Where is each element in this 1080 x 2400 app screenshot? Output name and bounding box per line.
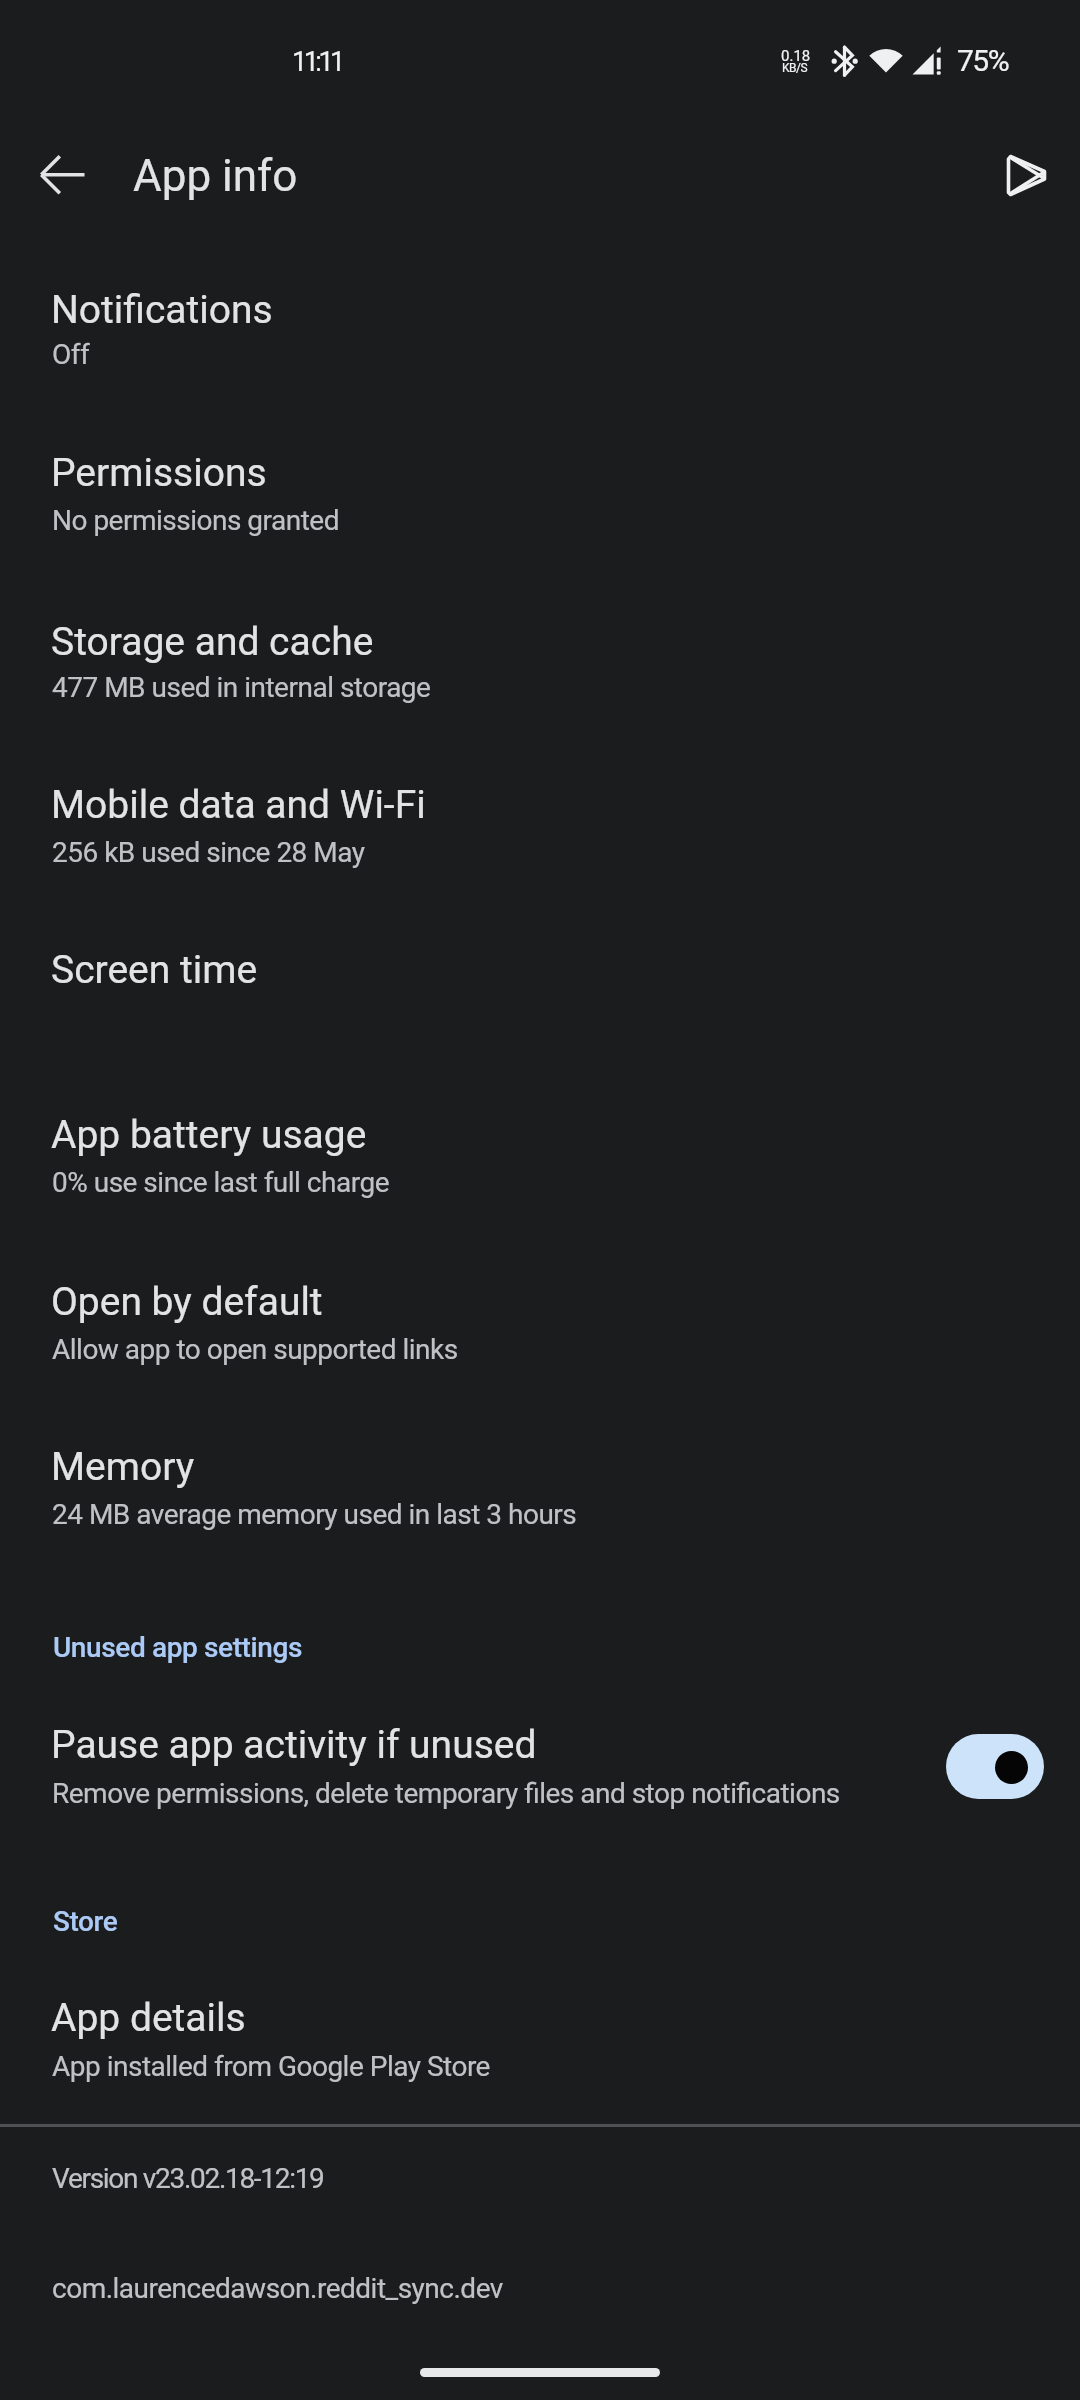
staticText: Memory xyxy=(51,1444,195,1490)
staticText: 24 MB average memory used in last 3 hour… xyxy=(52,1498,577,1531)
button[interactable] xyxy=(0,597,1080,737)
button[interactable] xyxy=(0,760,1080,900)
staticText: App info xyxy=(133,150,298,202)
staticText: 256 kB used since 28 May xyxy=(52,836,365,869)
button[interactable] xyxy=(946,1734,1044,1799)
staticText: Mobile data and Wi-Fi xyxy=(51,782,426,828)
staticText: 477 MB used in internal storage xyxy=(52,671,431,704)
button[interactable] xyxy=(0,428,1080,568)
staticText: Open by default xyxy=(51,1279,323,1325)
staticText: Notifications xyxy=(51,287,273,333)
staticText: Version v23.02.18-12:19 xyxy=(52,2162,324,2195)
staticText: Permissions xyxy=(51,450,267,496)
staticText: Unused app settings xyxy=(53,1631,302,1664)
staticText: App battery usage xyxy=(51,1112,367,1158)
staticText: Storage and cache xyxy=(51,619,374,665)
staticText: No permissions granted xyxy=(52,504,340,537)
staticText: Remove permissions, delete temporary fil… xyxy=(52,1777,840,1810)
button[interactable] xyxy=(0,925,1080,1065)
staticText: 0% use since last full charge xyxy=(52,1166,389,1199)
button[interactable] xyxy=(0,1700,1080,1840)
button[interactable] xyxy=(13,125,113,225)
button[interactable] xyxy=(0,1422,1080,1562)
staticText: Allow app to open supported links xyxy=(52,1333,458,1366)
staticText: Store xyxy=(53,1905,118,1938)
button[interactable] xyxy=(0,1257,1080,1397)
staticText: 11:11 xyxy=(292,46,342,78)
button[interactable] xyxy=(0,1973,1080,2113)
staticText: com.laurencedawson.reddit_sync.dev xyxy=(52,2272,503,2305)
staticText: Pause app activity if unused xyxy=(51,1722,537,1768)
button[interactable] xyxy=(983,130,1073,220)
staticText: App details xyxy=(51,1995,246,2041)
staticText: 0.18 xyxy=(781,47,811,65)
staticText: App installed from Google Play Store xyxy=(52,2050,490,2083)
button[interactable] xyxy=(0,1090,1080,1230)
staticText: KB/S xyxy=(782,61,808,75)
staticText: 75% xyxy=(957,43,1009,78)
button[interactable] xyxy=(0,265,1080,405)
staticText: Screen time xyxy=(51,947,258,993)
staticText: Off xyxy=(52,338,90,371)
